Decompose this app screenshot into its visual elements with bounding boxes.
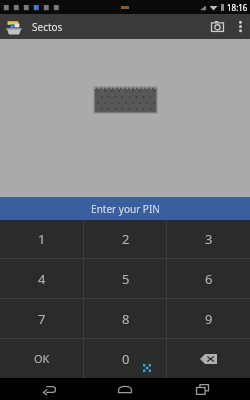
button[interactable]: 8 — [84, 299, 167, 338]
staticText: 2 — [122, 230, 130, 248]
button[interactable]: 5 — [84, 259, 167, 298]
button[interactable]: Camera — [204, 14, 230, 39]
button[interactable]: 4 — [0, 259, 84, 298]
button[interactable]: 9 — [167, 299, 250, 338]
staticText: 4 — [38, 270, 46, 288]
button[interactable]: Recents — [174, 378, 230, 400]
button[interactable]: Delete — [167, 339, 250, 378]
button[interactable]: OK — [0, 339, 84, 378]
staticText: Sectos — [32, 20, 63, 34]
button[interactable]: 3 — [167, 220, 250, 258]
button[interactable]: Home — [97, 378, 153, 400]
button[interactable]: 0 — [84, 339, 167, 378]
staticText: 1 — [38, 230, 46, 248]
staticText: 0 — [122, 350, 130, 368]
button[interactable]: More options — [230, 14, 250, 39]
button[interactable]: 2 — [84, 220, 167, 258]
staticText: OK — [34, 351, 50, 366]
staticText: 5 — [122, 270, 130, 288]
staticText: 9 — [205, 310, 213, 328]
button[interactable]: Back — [21, 378, 77, 400]
staticText: 7 — [38, 310, 46, 328]
staticText: 8 — [122, 310, 130, 328]
staticText: 18:16 — [227, 2, 248, 13]
staticText: 6 — [205, 270, 213, 288]
button[interactable]: 1 — [0, 220, 84, 258]
staticText: 3 — [205, 230, 213, 248]
button[interactable]: 6 — [167, 259, 250, 298]
button[interactable]: 7 — [0, 299, 84, 338]
staticText: Enter your PIN — [91, 202, 160, 216]
